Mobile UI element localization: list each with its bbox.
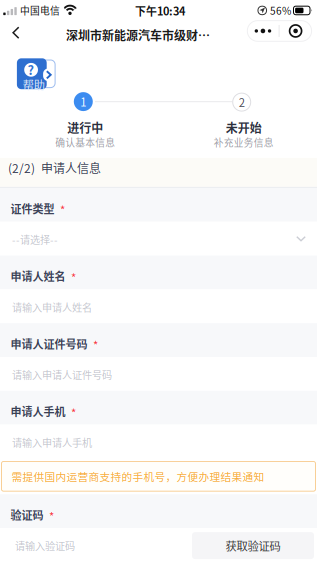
staticText: * [71, 404, 76, 421]
staticText: 验证码 [10, 507, 43, 523]
staticText: 申请人姓名 [10, 268, 65, 284]
staticText: 请输入申请人姓名 [12, 300, 92, 314]
staticText: 请输入申请人手机 [12, 435, 92, 450]
staticText: 请输入验证码 [15, 538, 75, 553]
staticText: * [60, 201, 65, 218]
button[interactable]: 获取验证码 [192, 532, 317, 559]
button[interactable]: 返回 [1, 20, 31, 46]
staticText: * [93, 337, 98, 353]
button[interactable]: 帮助 [17, 58, 56, 89]
staticText: 需提供国内运营商支持的手机号，方便办理结果通知 [11, 469, 264, 484]
staticText: 深圳市新能源汽车市级财… [66, 26, 210, 44]
staticText: 获取验证码 [225, 537, 280, 554]
staticText: 补充业务信息 [214, 135, 274, 149]
staticText: * [71, 269, 76, 285]
staticText: 请输入申请人证件号码 [12, 367, 112, 382]
staticText: ? [28, 60, 35, 78]
button[interactable]: 请输入申请人手机 [0, 425, 317, 458]
staticText: --请选择-- [12, 232, 58, 247]
staticText: 申请人手机 [10, 403, 65, 419]
staticText: 56% [270, 3, 291, 18]
button[interactable]: --请选择-- [0, 222, 317, 255]
staticText: 未开始 [226, 119, 262, 136]
staticText: 中国电信 [20, 3, 60, 17]
button[interactable]: 请输入申请人证件号码 [0, 357, 317, 391]
staticText: 申请人证件号码 [10, 336, 87, 352]
staticText: 1 [80, 93, 86, 110]
staticText: 证件类型 [10, 200, 54, 216]
staticText: 进行中 [67, 119, 103, 136]
staticText: 下午10:34 [135, 3, 185, 18]
staticText: 2 [239, 94, 245, 110]
staticText: * [49, 508, 54, 524]
staticText: (2/2) 申请人信息 [8, 159, 101, 177]
staticText: 确认基本信息 [55, 135, 115, 149]
button[interactable]: 更多 [247, 21, 312, 41]
button[interactable]: 请输入申请人姓名 [0, 289, 317, 323]
staticText: 帮助 [23, 76, 45, 93]
